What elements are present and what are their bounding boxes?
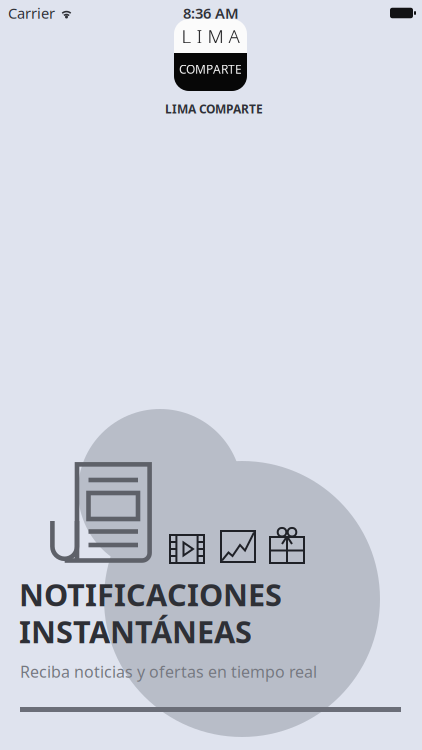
staticText: LIMA COMPARTE [165, 101, 263, 117]
staticText: COMPARTE [179, 61, 242, 77]
staticText: NOTIFICACIONES [19, 574, 282, 615]
staticText: 8:36 AM [183, 3, 239, 23]
staticText: Carrier [8, 3, 55, 23]
staticText: Reciba noticias y ofertas en tiempo real [20, 661, 317, 682]
staticText: INSTANTÁNEAS [19, 611, 252, 652]
staticText: L I M A [181, 24, 239, 48]
